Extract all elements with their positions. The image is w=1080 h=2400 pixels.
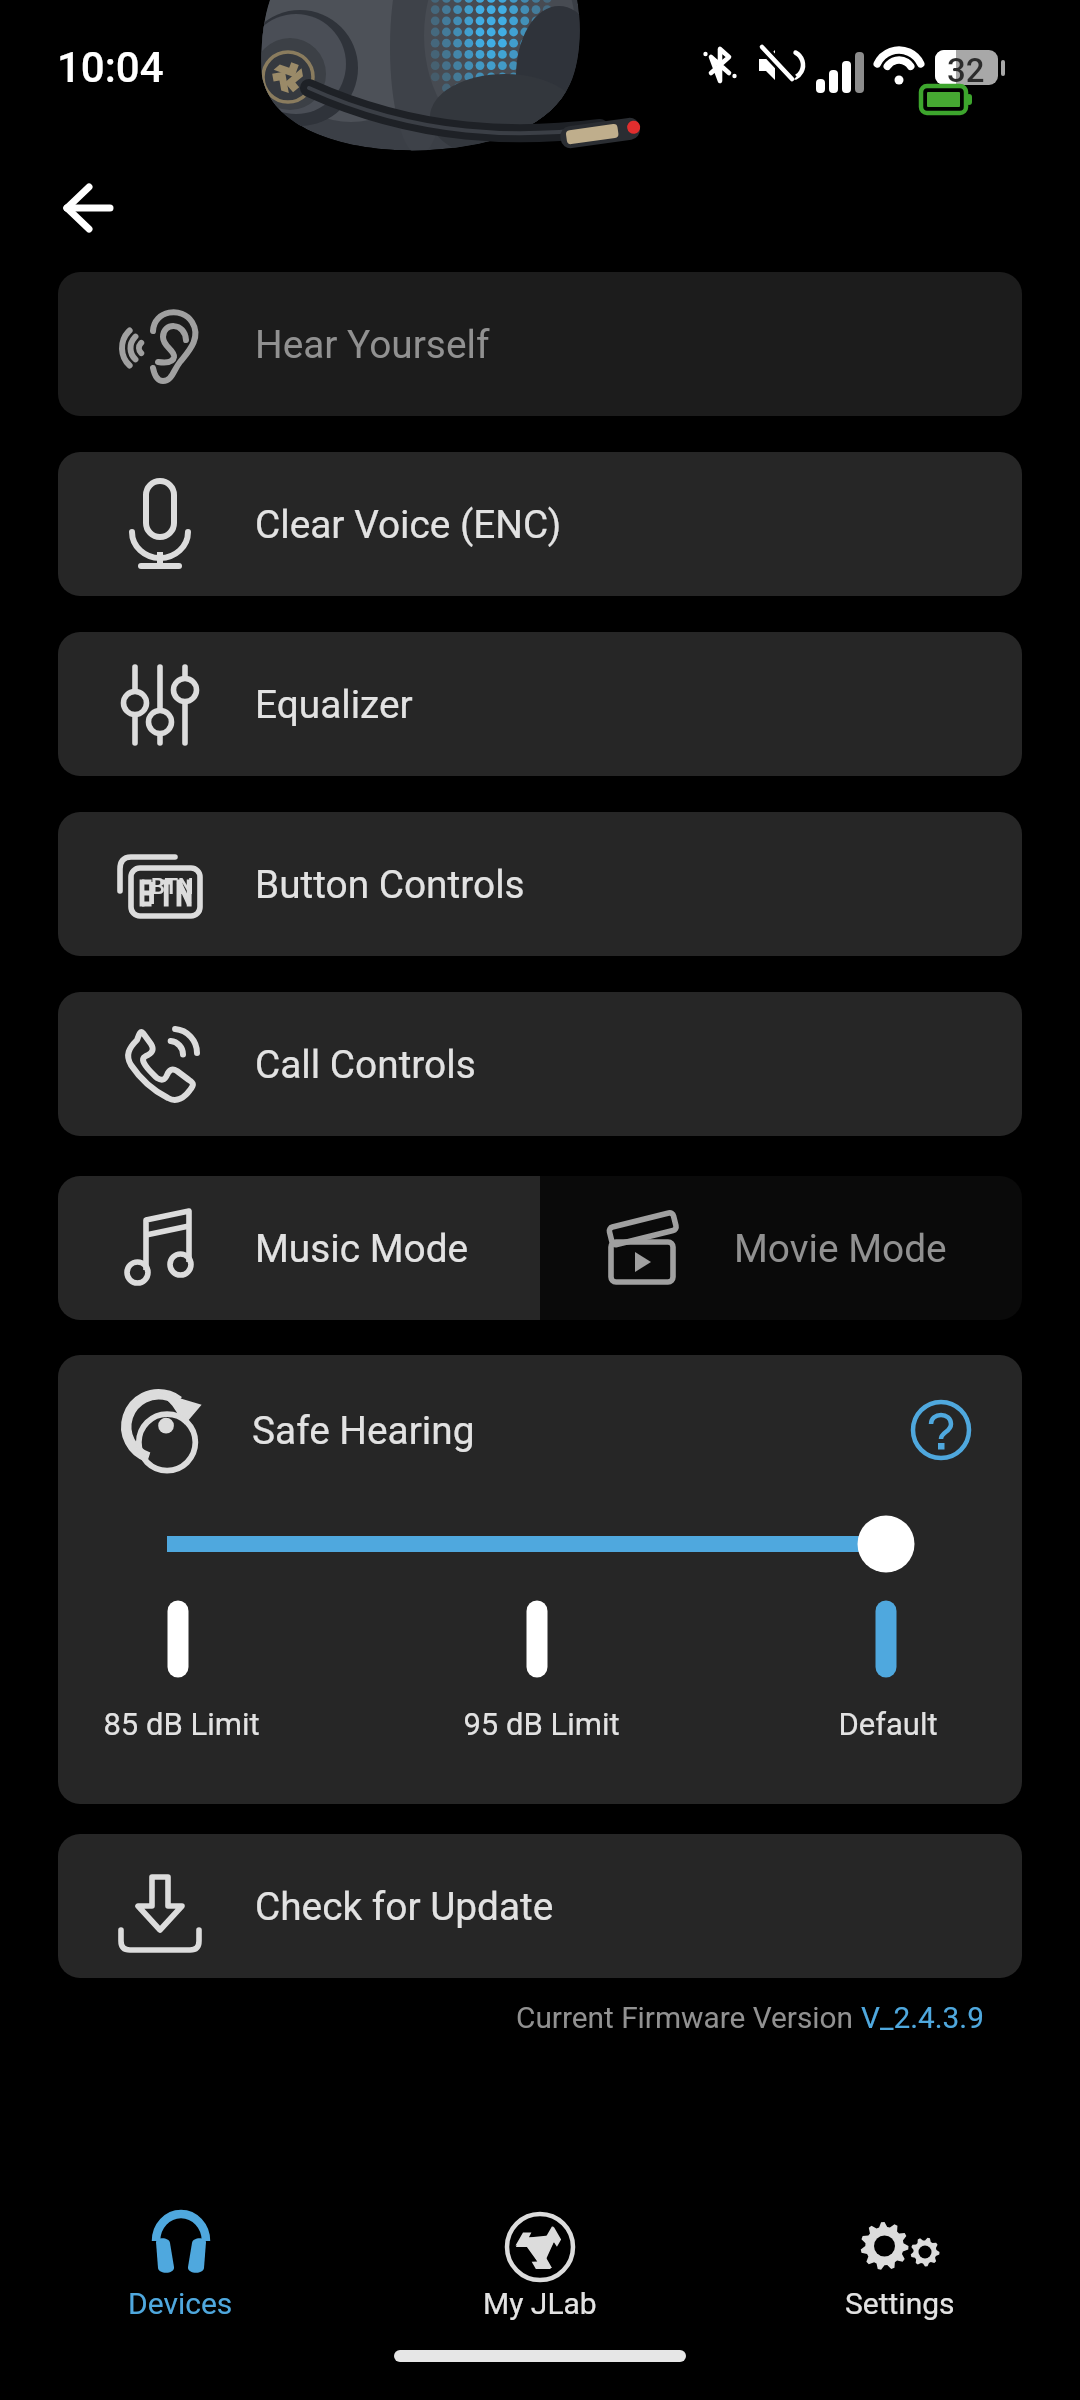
button[interactable]: Call Controls <box>58 992 1022 1136</box>
staticText: Default <box>838 1706 938 1742</box>
button[interactable]: Music Mode <box>58 1176 540 1320</box>
staticText: Safe Hearing <box>252 1408 475 1453</box>
staticText: Hear Yourself <box>255 322 490 367</box>
button[interactable]: Hear Yourself <box>58 272 1022 416</box>
staticText: Devices <box>128 2286 233 2321</box>
button[interactable]: Clear Voice (ENC) <box>58 452 1022 596</box>
button[interactable]: Back <box>18 158 122 258</box>
staticText: 10:04 <box>57 43 164 92</box>
staticText: Clear Voice (ENC) <box>255 502 562 547</box>
staticText: Button Controls <box>255 862 525 907</box>
staticText: Call Controls <box>255 1042 476 1087</box>
staticText: Movie Mode <box>734 1226 947 1271</box>
staticText: My JLab <box>483 2286 597 2321</box>
button[interactable]: Check for Update <box>58 1834 1022 1978</box>
button[interactable]: Help <box>896 1385 986 1475</box>
button[interactable]: Equalizer <box>58 632 1022 776</box>
button[interactable]: Movie Mode <box>540 1176 1022 1320</box>
staticText: Check for Update <box>255 1884 554 1929</box>
staticText: BTN <box>151 874 194 900</box>
button[interactable]: BTN <box>58 812 1022 956</box>
staticText: Equalizer <box>255 682 413 727</box>
staticText: V_2.4.3.9 <box>861 2000 984 2035</box>
button[interactable]: My JLab <box>360 2204 720 2354</box>
staticText: Music Mode <box>255 1226 469 1271</box>
staticText: 85 dB Limit <box>103 1706 260 1742</box>
staticText: Settings <box>845 2286 955 2321</box>
button[interactable]: Devices <box>0 2204 360 2354</box>
staticText: 32 <box>947 51 985 90</box>
staticText: Current Firmware Version <box>516 2000 861 2035</box>
staticText: 95 dB Limit <box>463 1706 620 1742</box>
button[interactable]: Settings <box>720 2204 1080 2354</box>
